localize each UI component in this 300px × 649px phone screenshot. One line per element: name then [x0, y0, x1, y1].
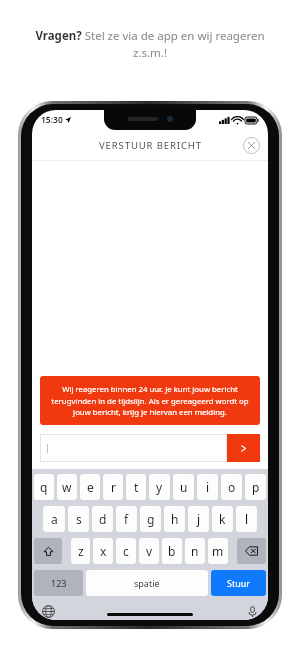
staticText: y — [156, 479, 163, 495]
button[interactable]: i — [197, 474, 218, 500]
staticText: x — [100, 543, 107, 559]
button[interactable]: w — [57, 474, 77, 500]
staticText: m — [212, 543, 224, 559]
button[interactable]: Stuur — [211, 570, 266, 596]
button[interactable]: Sluiten — [241, 135, 261, 155]
staticText: t — [134, 479, 139, 495]
button[interactable] — [40, 434, 227, 462]
button[interactable]: u — [173, 474, 194, 500]
button[interactable]: 123 — [34, 570, 83, 596]
button[interactable]: n — [185, 538, 205, 564]
button[interactable]: Dicteren — [244, 603, 260, 619]
staticText: k — [219, 511, 226, 527]
staticText: h — [171, 511, 179, 527]
staticText: d — [99, 511, 107, 527]
button[interactable]: m — [208, 538, 228, 564]
staticText: r — [111, 479, 116, 495]
staticText: o — [228, 479, 236, 495]
staticText: g — [147, 511, 155, 527]
button[interactable]: q — [34, 474, 54, 500]
staticText: 15:30 — [41, 114, 63, 126]
staticText: a — [51, 511, 58, 527]
button[interactable]: b — [162, 538, 182, 564]
staticText: spatie — [134, 577, 160, 589]
staticText: l — [245, 511, 249, 527]
button[interactable]: o — [221, 474, 242, 500]
button[interactable]: z — [71, 538, 90, 564]
button[interactable]: Taal wisselen — [40, 603, 56, 619]
button[interactable]: l — [236, 506, 257, 532]
staticText: f — [124, 511, 129, 527]
button[interactable]: y — [149, 474, 170, 500]
staticText: Vragen? Stel ze via de app en wij reager… — [24, 28, 276, 60]
staticText: Wij reageren binnen 24 uur. Je kunt jouw… — [50, 384, 250, 417]
staticText: u — [180, 479, 188, 495]
staticText: VERSTUUR BERICHT — [99, 139, 202, 152]
staticText: q — [40, 479, 48, 495]
button[interactable]: p — [245, 474, 266, 500]
staticText: 123 — [51, 577, 67, 589]
staticText: j — [197, 511, 201, 527]
button[interactable]: d — [92, 506, 113, 532]
staticText: e — [87, 479, 94, 495]
button[interactable]: g — [140, 506, 161, 532]
staticText: s — [76, 511, 82, 527]
staticText: i — [206, 479, 210, 495]
button[interactable]: s — [68, 506, 89, 532]
button[interactable]: f — [116, 506, 137, 532]
button[interactable]: r — [103, 474, 123, 500]
button[interactable]: Wij reageren binnen 24 uur. Je kunt jouw… — [40, 376, 260, 425]
button[interactable]: t — [126, 474, 146, 500]
button[interactable]: e — [80, 474, 100, 500]
staticText: w — [62, 479, 72, 495]
staticText: Stuur — [227, 577, 251, 589]
button[interactable]: c — [116, 538, 136, 564]
staticText: c — [123, 543, 129, 559]
staticText: b — [168, 543, 176, 559]
button[interactable]: j — [188, 506, 209, 532]
button[interactable]: a — [43, 506, 65, 532]
button[interactable]: k — [212, 506, 233, 532]
button[interactable]: x — [93, 538, 113, 564]
button[interactable]: h — [164, 506, 185, 532]
staticText: n — [191, 543, 199, 559]
staticText: z — [78, 543, 84, 559]
button[interactable]: Backspace — [237, 538, 266, 564]
staticText: p — [252, 479, 260, 495]
staticText: v — [146, 543, 153, 559]
button[interactable]: spatie — [86, 570, 208, 596]
button[interactable]: Shift — [34, 538, 62, 564]
button[interactable]: v — [139, 538, 159, 564]
button[interactable]: Verstuur — [227, 434, 260, 462]
